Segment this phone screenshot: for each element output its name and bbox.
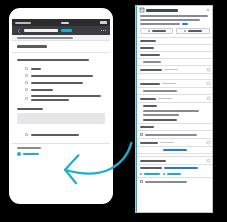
button[interactable]: Edit	[207, 97, 210, 100]
button[interactable]: More options	[100, 27, 107, 34]
button[interactable]	[17, 133, 105, 136]
button[interactable]	[17, 67, 105, 70]
button[interactable]	[176, 28, 210, 34]
button[interactable]	[17, 81, 105, 84]
button[interactable]	[17, 95, 105, 101]
button[interactable]: Edit	[207, 82, 210, 85]
button[interactable]: Edit	[207, 141, 210, 144]
button[interactable]	[17, 74, 105, 77]
button[interactable]	[17, 152, 39, 156]
button[interactable]: Close	[206, 8, 210, 12]
button[interactable]	[140, 28, 173, 34]
button[interactable]	[140, 180, 210, 183]
button[interactable]: Edit	[207, 159, 210, 162]
button[interactable]: Edit	[207, 68, 210, 71]
button[interactable]	[140, 133, 210, 136]
button[interactable]: Back	[15, 27, 22, 34]
button[interactable]	[17, 88, 105, 91]
